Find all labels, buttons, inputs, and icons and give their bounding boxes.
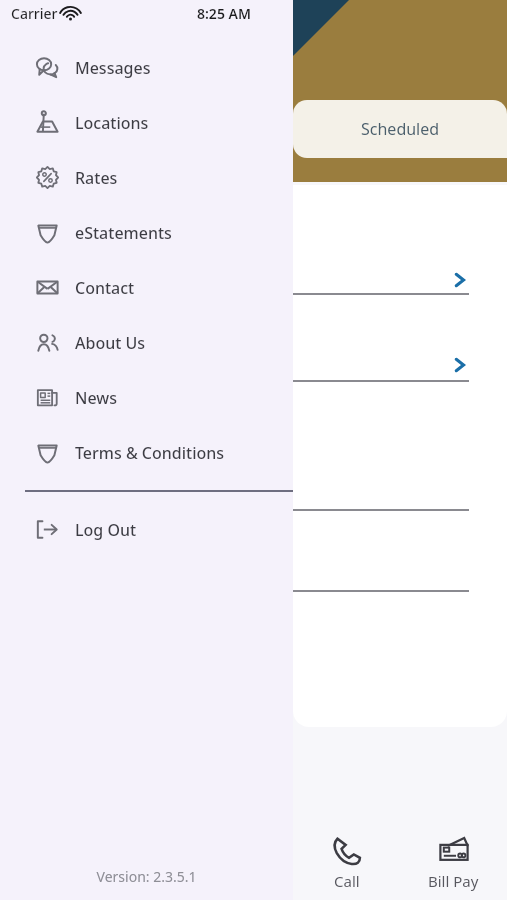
button[interactable]: Contact (0, 260, 293, 315)
staticText: Call (334, 871, 360, 891)
staticText: Locations (75, 112, 149, 134)
button[interactable]: About Us (0, 315, 293, 370)
button[interactable]: Open details (449, 354, 471, 376)
staticText: Log Out (75, 519, 137, 541)
staticText: Carrier (11, 4, 58, 23)
button[interactable]: Scheduled (293, 100, 507, 158)
other: Bill Pay (437, 834, 471, 868)
button[interactable]: Call (293, 818, 400, 900)
button[interactable]: eStatements (0, 205, 293, 260)
button[interactable]: Bill Pay (400, 818, 507, 900)
staticText: Terms & Conditions (75, 442, 225, 464)
button[interactable]: Rates (0, 150, 293, 205)
button[interactable]: Open details (449, 269, 471, 291)
staticText: Bill Pay (428, 871, 479, 891)
button[interactable]: Locations (0, 95, 293, 150)
staticText: eStatements (75, 222, 172, 244)
button[interactable]: Log Out (0, 502, 293, 557)
staticText: Version: 2.3.5.1 (0, 867, 293, 886)
button[interactable]: Messages (0, 40, 293, 95)
staticText: Rates (75, 167, 118, 189)
other: Call (330, 834, 364, 868)
button[interactable]: Terms & Conditions (0, 425, 293, 480)
button[interactable]: News (0, 370, 293, 425)
staticText: News (75, 387, 117, 409)
staticText: About Us (75, 332, 146, 354)
staticText: Messages (75, 57, 151, 79)
staticText: Scheduled (361, 118, 440, 140)
staticText: 8:25 AM (197, 4, 251, 23)
staticText: Contact (75, 277, 135, 299)
